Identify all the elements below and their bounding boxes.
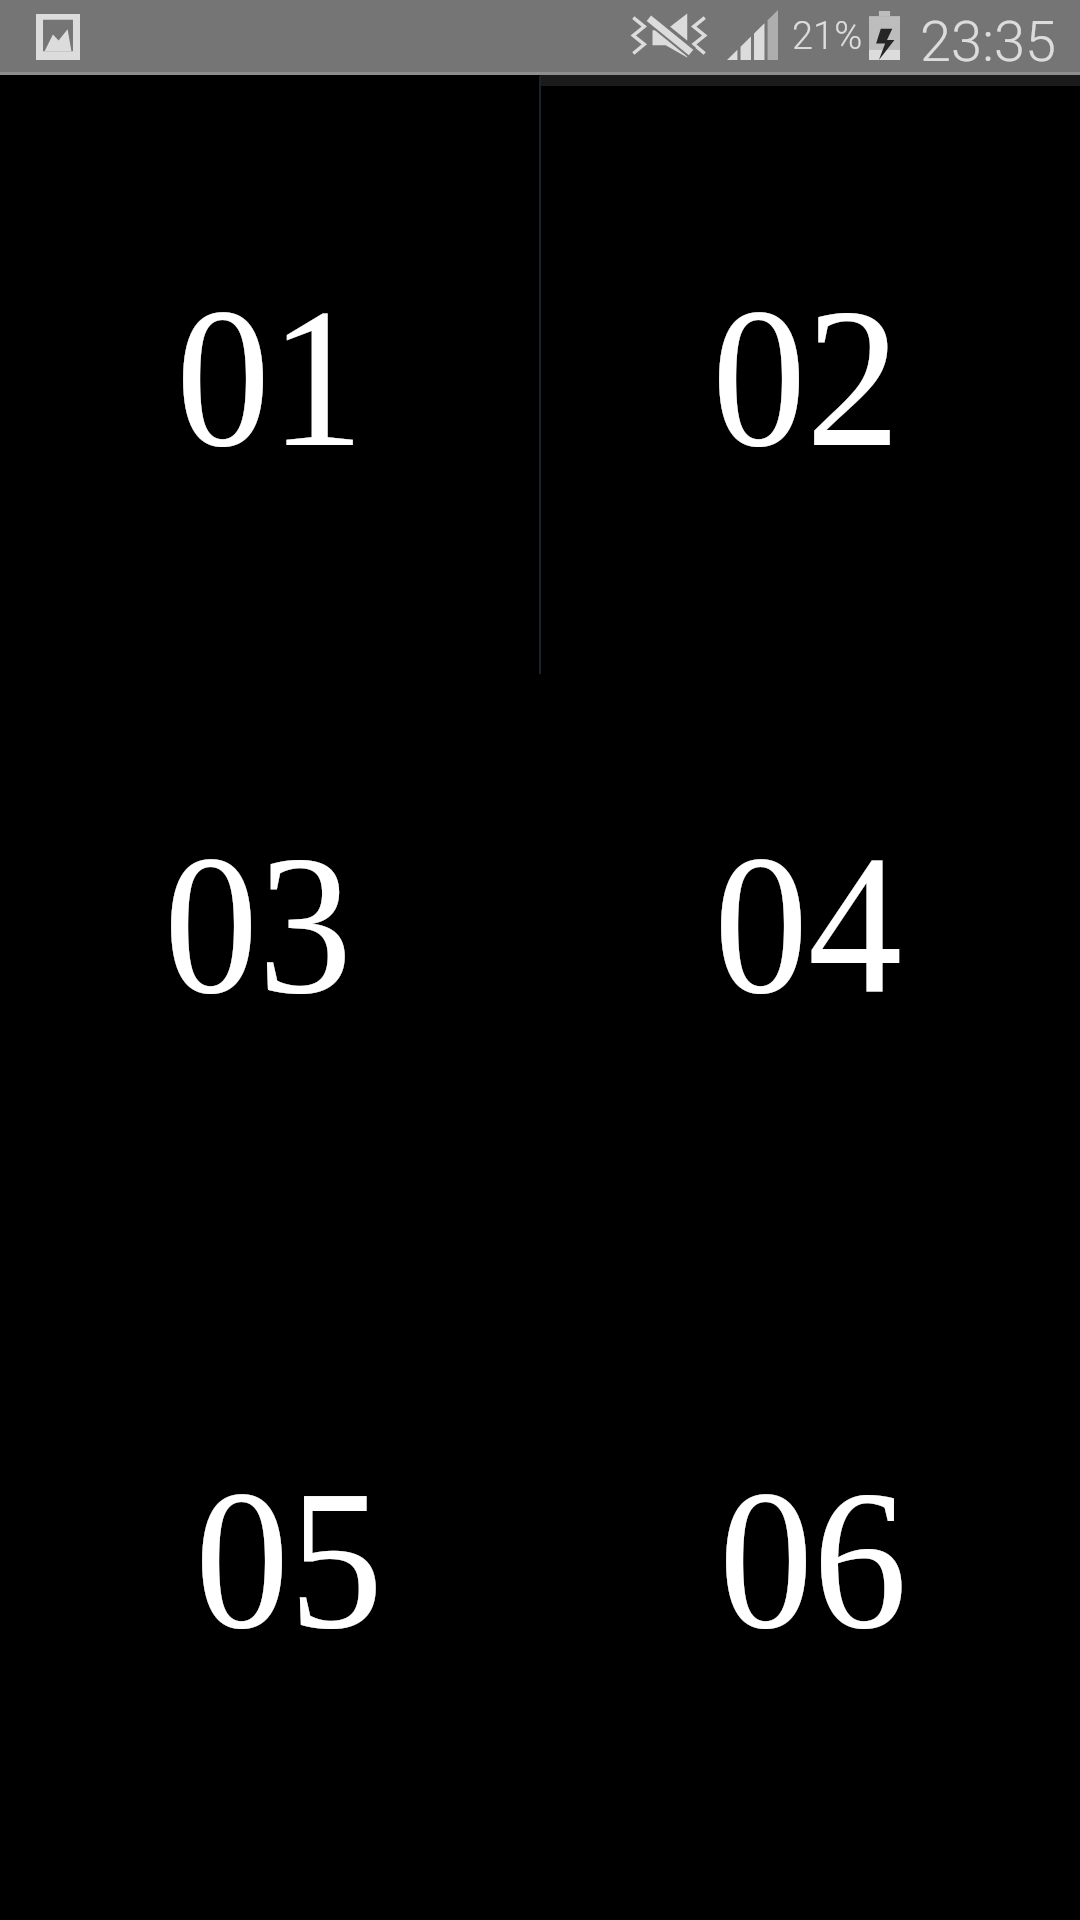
button[interactable]: 06 (540, 1295, 1080, 1920)
staticText: 21% (792, 14, 863, 59)
staticText: 03 (164, 814, 352, 1035)
staticText: 05 (195, 1449, 383, 1670)
staticText: 04 (714, 814, 902, 1035)
staticText: 23:35 (920, 9, 1057, 75)
other: Battery charging, 21 percent (869, 11, 900, 60)
staticText: 02 (712, 267, 900, 488)
button[interactable]: 02 (540, 76, 1080, 675)
button[interactable]: 01 (0, 76, 540, 675)
other: Sound off, vibrate (631, 11, 707, 59)
staticText: 01 (176, 267, 364, 488)
staticText: 06 (719, 1449, 907, 1670)
button[interactable]: 05 (0, 1295, 540, 1920)
button[interactable]: 03 (0, 675, 540, 1295)
button[interactable]: 04 (540, 675, 1080, 1295)
other: Screenshot captured (36, 14, 80, 60)
other: Mobile signal strength (727, 10, 778, 60)
